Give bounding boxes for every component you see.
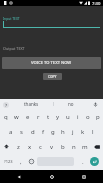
staticText: k	[81, 128, 85, 136]
staticText: j	[72, 128, 74, 136]
button[interactable]: Backspace	[90, 139, 103, 154]
button[interactable]: y	[53, 109, 63, 124]
button[interactable]: h	[58, 124, 68, 139]
staticText: f	[42, 128, 45, 136]
button[interactable]: Home	[39, 170, 65, 183]
button[interactable]: z	[13, 139, 24, 154]
button[interactable]: m	[79, 139, 90, 154]
staticText: m	[82, 143, 88, 151]
button[interactable]: p	[93, 109, 103, 124]
button[interactable]: COPY	[43, 73, 62, 80]
staticText: h	[61, 128, 65, 136]
staticText: o	[86, 113, 90, 121]
staticText: v	[50, 143, 54, 151]
button[interactable]: Enter	[90, 157, 99, 166]
button[interactable]: b	[57, 139, 68, 154]
button[interactable]: w	[11, 109, 22, 124]
button[interactable]: c	[35, 139, 46, 154]
button[interactable]: s	[16, 124, 27, 139]
button[interactable]: Back	[6, 170, 32, 183]
button[interactable]: j	[68, 124, 78, 139]
button[interactable]: Voice input	[89, 99, 101, 109]
button[interactable]: i	[73, 109, 83, 124]
button[interactable]: g	[48, 124, 58, 139]
button[interactable]: ?123	[0, 154, 16, 169]
staticText: x	[28, 143, 32, 151]
button[interactable]: Shift	[0, 139, 13, 154]
staticText: thanks	[24, 101, 39, 107]
staticText: q	[4, 113, 8, 121]
staticText: g	[51, 128, 55, 136]
staticText: e	[26, 113, 30, 121]
button[interactable]: Emoji	[26, 154, 36, 169]
button[interactable]: More suggestions	[2, 101, 9, 108]
staticText: r	[37, 113, 40, 121]
button[interactable]: VOICE TO TEXT NOW	[2, 57, 101, 69]
staticText: a	[9, 128, 13, 136]
staticText: l	[92, 128, 94, 136]
button[interactable]: no	[54, 99, 88, 109]
staticText: 7:30	[92, 1, 101, 7]
staticText: COPY	[48, 75, 57, 79]
staticText: Input TEXT	[3, 16, 20, 20]
staticText: b	[61, 143, 65, 151]
staticText: ?123	[4, 159, 13, 164]
button[interactable]: t	[43, 109, 53, 124]
button[interactable]: .	[78, 154, 88, 169]
button[interactable]: n	[68, 139, 79, 154]
staticText: c	[39, 143, 42, 151]
staticText: .	[82, 158, 84, 166]
staticText: no	[68, 101, 74, 107]
button[interactable]: ,	[16, 154, 26, 169]
button[interactable]: x	[24, 139, 35, 154]
staticText: Output TEXT	[3, 46, 25, 51]
button[interactable]: v	[46, 139, 57, 154]
staticText: z	[17, 143, 20, 151]
button[interactable]: e	[22, 109, 33, 124]
button[interactable]: f	[38, 124, 48, 139]
button[interactable]: o	[83, 109, 93, 124]
button[interactable]: q	[0, 109, 11, 124]
staticText: t	[47, 113, 50, 121]
button[interactable]: d	[27, 124, 38, 139]
button[interactable]: r	[33, 109, 43, 124]
staticText: n	[72, 143, 76, 151]
button[interactable]: k	[78, 124, 88, 139]
staticText: s	[20, 128, 23, 136]
button[interactable]: l	[88, 124, 98, 139]
staticText: w	[14, 113, 19, 121]
staticText: u	[66, 113, 70, 121]
button[interactable]: u	[63, 109, 73, 124]
staticText: ,	[20, 158, 22, 166]
staticText: i	[77, 113, 79, 121]
staticText: VOICE TO TEXT NOW	[31, 60, 72, 66]
button[interactable]: thanks	[9, 99, 53, 109]
staticText: y	[56, 113, 60, 121]
staticText: d	[31, 128, 35, 136]
staticText: p	[96, 113, 100, 121]
button[interactable]: a	[5, 124, 16, 139]
button[interactable]: Recents	[71, 170, 97, 183]
